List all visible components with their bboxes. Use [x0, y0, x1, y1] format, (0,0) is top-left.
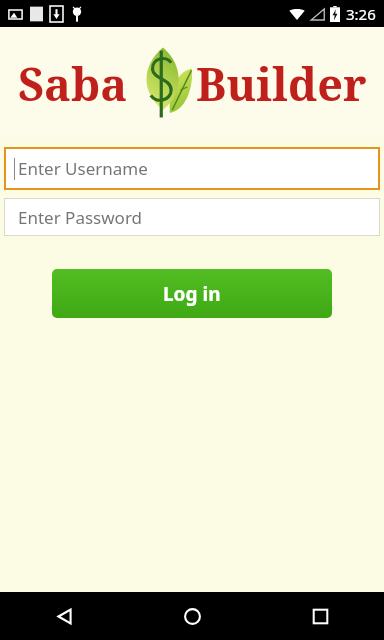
staticText: Builder: [196, 53, 367, 114]
staticText: 3:26: [346, 4, 376, 24]
button[interactable]: Enter Username: [4, 147, 380, 190]
staticText: Enter Password: [18, 206, 143, 229]
button[interactable]: Back: [0, 592, 128, 640]
button[interactable]: Enter Password: [4, 198, 380, 236]
staticText: Log in: [163, 281, 221, 307]
button[interactable]: Home: [128, 592, 256, 640]
button[interactable]: Log in: [52, 269, 332, 318]
staticText: Enter Username: [18, 157, 148, 180]
button[interactable]: Recent apps: [256, 592, 384, 640]
staticText: Saba: [18, 53, 128, 114]
